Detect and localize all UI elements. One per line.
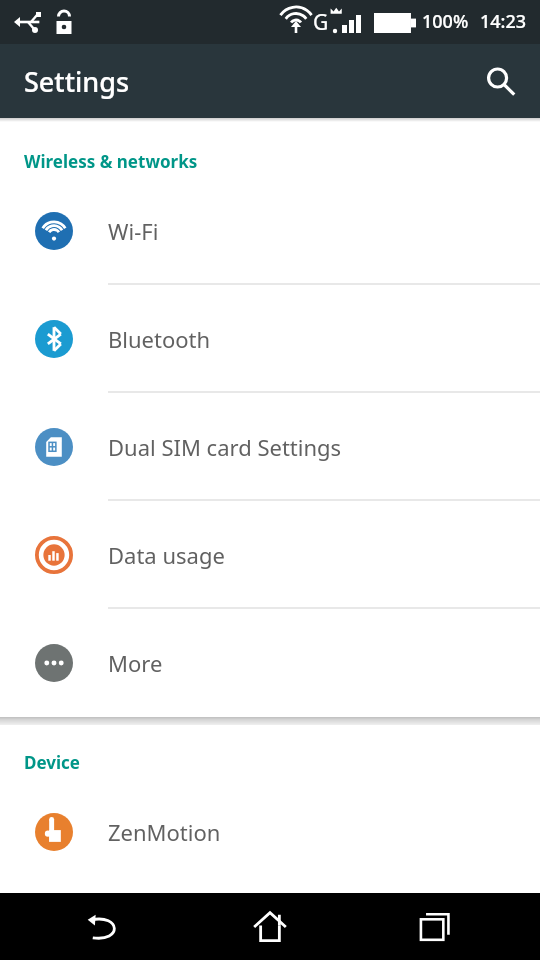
staticText: More (108, 648, 163, 678)
button[interactable]: More (0, 609, 540, 717)
button[interactable]: Wi-Fi (0, 177, 540, 285)
staticText: G (313, 8, 329, 37)
staticText: Data usage (108, 540, 225, 570)
staticText: Settings (24, 63, 130, 100)
staticText: 14:23 (480, 9, 527, 34)
staticText: Dual SIM card Settings (108, 432, 342, 462)
button[interactable]: Home (210, 893, 330, 960)
staticText: Wi-Fi (108, 216, 159, 246)
staticText: Bluetooth (108, 324, 211, 354)
button[interactable]: Dual SIM card Settings (0, 393, 540, 501)
button[interactable]: Back (45, 893, 165, 960)
button[interactable]: Data usage (0, 501, 540, 609)
button[interactable]: Bluetooth (0, 285, 540, 393)
button[interactable]: Recent apps (375, 893, 495, 960)
staticText: 100% (422, 9, 469, 34)
staticText: Device (24, 751, 80, 774)
button[interactable]: ZenMotion (0, 778, 540, 886)
staticText: ZenMotion (108, 817, 221, 847)
staticText: Wireless & networks (24, 150, 198, 173)
button[interactable]: Search (474, 55, 526, 107)
